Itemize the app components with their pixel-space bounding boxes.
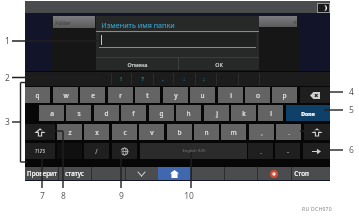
staticText: g xyxy=(159,109,164,118)
button[interactable]: c xyxy=(112,124,137,140)
staticText: r xyxy=(119,91,122,100)
button[interactable]: x xyxy=(84,124,109,140)
staticText: m xyxy=(230,128,237,137)
button[interactable]: n xyxy=(194,124,219,140)
staticText: ! xyxy=(120,75,122,83)
staticText: i xyxy=(230,91,232,100)
staticText: , xyxy=(261,128,263,136)
staticText: 7 xyxy=(40,190,45,202)
button[interactable]: y xyxy=(163,87,188,103)
button[interactable]: Shift xyxy=(25,124,55,140)
staticText: k xyxy=(242,109,246,118)
button[interactable]: ?123 xyxy=(25,143,55,159)
button[interactable]: , xyxy=(249,124,274,140)
staticText: 3 xyxy=(5,116,10,128)
button[interactable]: Change language xyxy=(112,143,137,159)
staticText: 8 xyxy=(61,190,66,202)
staticText: f xyxy=(132,109,135,118)
button[interactable]: u xyxy=(190,87,215,103)
staticText: p xyxy=(282,91,287,100)
staticText: 5 xyxy=(349,104,354,116)
staticText: - xyxy=(287,147,289,155)
button[interactable]: h xyxy=(176,105,201,121)
button[interactable]: g xyxy=(149,105,174,121)
button[interactable]: Stop xyxy=(257,167,290,180)
button[interactable]: k xyxy=(231,105,256,121)
staticText: j xyxy=(216,109,218,118)
staticText: o xyxy=(256,91,260,100)
button[interactable]: i xyxy=(218,87,243,103)
button[interactable]: v xyxy=(139,124,164,140)
staticText: z xyxy=(68,128,72,137)
staticText: English (US) xyxy=(182,148,206,154)
button[interactable]: Expand xyxy=(125,167,158,180)
button[interactable]: s xyxy=(66,105,91,121)
staticText: RU DCH070 xyxy=(302,206,332,213)
staticText: ?123 xyxy=(35,148,45,154)
button[interactable]: p xyxy=(272,87,297,103)
button[interactable]: f xyxy=(121,105,146,121)
button[interactable]: o xyxy=(245,87,270,103)
staticText: 9 xyxy=(119,190,124,202)
button[interactable]: r xyxy=(108,87,133,103)
button[interactable]: d xyxy=(94,105,119,121)
button[interactable]: Next xyxy=(303,143,330,159)
button[interactable]: Sleep mode xyxy=(317,3,330,13)
staticText: t xyxy=(146,91,149,100)
button[interactable]: Home xyxy=(158,167,191,180)
button[interactable]: t xyxy=(135,87,160,103)
staticText: Изменить имя папки xyxy=(101,20,175,30)
button[interactable]: z xyxy=(57,124,82,140)
button[interactable]: . xyxy=(276,124,301,140)
staticText: y xyxy=(174,91,178,100)
staticText: 1 xyxy=(5,35,10,47)
button[interactable]: a xyxy=(39,105,64,121)
staticText: d xyxy=(104,109,109,118)
button[interactable]: . xyxy=(248,143,273,159)
button[interactable]: j xyxy=(204,105,229,121)
staticText: . xyxy=(288,128,290,136)
staticText: Стоп xyxy=(294,169,309,178)
button[interactable]: Backspace xyxy=(300,87,330,103)
button[interactable]: English (US) xyxy=(140,143,247,159)
button[interactable]: Отмена xyxy=(96,58,178,70)
staticText: 10 xyxy=(184,190,194,202)
button[interactable]: Shift xyxy=(304,124,330,140)
staticText: c xyxy=(123,128,127,137)
staticText: OK xyxy=(215,61,223,68)
staticText: e xyxy=(91,91,95,100)
button[interactable]: - xyxy=(275,143,300,159)
staticText: Folder xyxy=(55,19,71,26)
staticText: × xyxy=(293,18,297,27)
button[interactable]: OK xyxy=(178,58,259,70)
staticText: w xyxy=(63,91,69,100)
button[interactable]: b xyxy=(167,124,192,140)
button[interactable]: w xyxy=(53,87,78,103)
button[interactable]: Проверит xyxy=(25,167,58,180)
staticText: 2 xyxy=(5,72,10,84)
button[interactable]: статус xyxy=(58,167,91,180)
button[interactable]: e xyxy=(80,87,105,103)
staticText: n xyxy=(204,128,209,137)
button[interactable]: m xyxy=(221,124,246,140)
staticText: 6 xyxy=(349,144,354,156)
staticText: ? xyxy=(141,75,144,83)
staticText: u xyxy=(200,91,205,100)
staticText: s xyxy=(77,109,81,118)
staticText: , xyxy=(162,75,164,83)
staticText: Отмена xyxy=(127,61,148,68)
button[interactable] xyxy=(57,143,82,159)
staticText: 4 xyxy=(349,86,354,98)
button[interactable]: / xyxy=(84,143,109,159)
button[interactable]: l xyxy=(258,105,283,121)
button[interactable]: Стоп xyxy=(291,167,330,180)
staticText: h xyxy=(186,109,191,118)
button[interactable]: Done xyxy=(286,105,330,121)
button[interactable]: q xyxy=(25,87,50,103)
staticText: . xyxy=(260,147,262,155)
staticText: x xyxy=(95,128,99,137)
staticText: ; xyxy=(203,75,205,83)
staticText: : xyxy=(183,75,185,83)
staticText: / xyxy=(95,147,98,155)
staticText: l xyxy=(270,109,272,118)
